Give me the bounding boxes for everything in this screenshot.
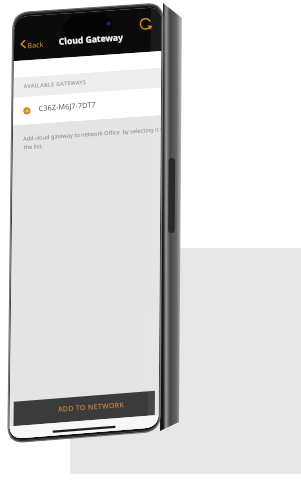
button[interactable]: Back: [8, 36, 46, 54]
button[interactable]: Gateway C36Z-M6J7-7DT7: [6, 90, 158, 116]
button[interactable]: Add to network: [8, 398, 156, 426]
button[interactable]: Refresh: [130, 29, 157, 53]
